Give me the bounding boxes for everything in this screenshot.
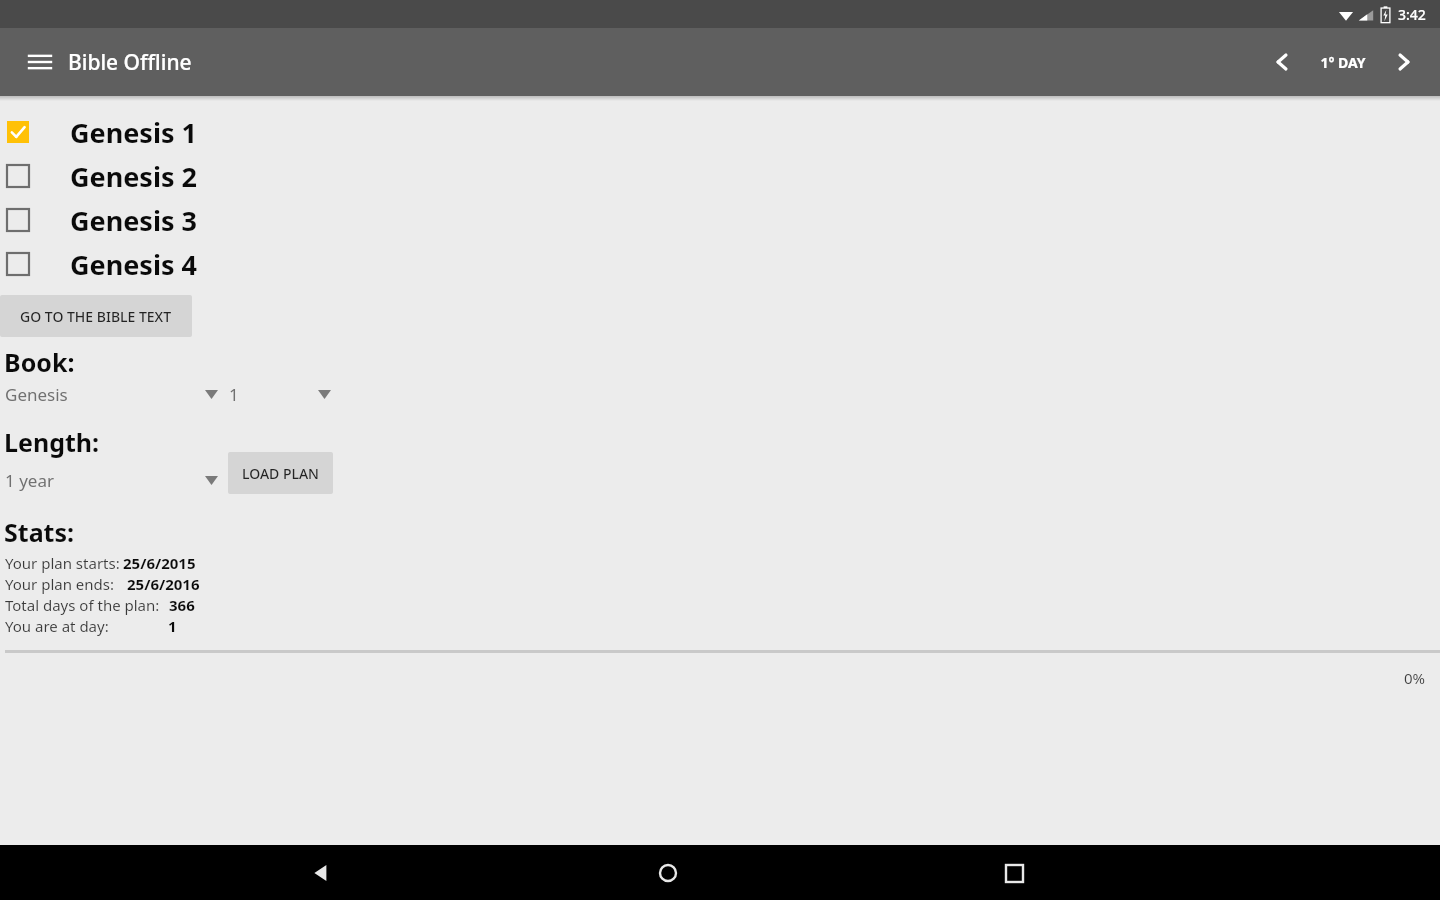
staticText: Total days of the plan:	[5, 595, 160, 615]
button[interactable]: 1 year	[0, 465, 224, 495]
staticText: LOAD PLAN	[242, 464, 319, 483]
staticText: 1	[229, 383, 239, 406]
staticText: Stats:	[4, 515, 75, 549]
staticText: Genesis 2	[70, 158, 197, 195]
staticText: Book:	[4, 345, 75, 379]
button[interactable]: Back	[298, 849, 346, 897]
staticText: Genesis 1	[70, 114, 197, 151]
button[interactable]: Genesis 3	[0, 198, 1440, 242]
button[interactable]: 1° DAY	[1304, 40, 1382, 84]
button[interactable]: Next day	[1382, 40, 1426, 84]
staticText: GO TO THE BIBLE TEXT	[20, 307, 172, 326]
staticText: You are at day:	[5, 616, 109, 636]
button[interactable]: Genesis 4	[0, 242, 1440, 286]
staticText: 366	[169, 595, 195, 615]
staticText: Genesis	[5, 383, 68, 406]
staticText: Your plan starts:	[5, 553, 120, 573]
staticText: Length:	[4, 425, 100, 459]
button[interactable]: LOAD PLAN	[228, 452, 333, 494]
staticText: 25/6/2015	[123, 553, 196, 573]
staticText: 1	[168, 616, 177, 636]
button[interactable]: GO TO THE BIBLE TEXT	[0, 295, 192, 337]
staticText: Genesis 4	[70, 246, 197, 283]
button[interactable]: Home	[644, 849, 692, 897]
staticText: Bible Offline	[68, 48, 192, 77]
staticText: Your plan ends:	[5, 574, 118, 594]
staticText: 1° DAY	[1320, 53, 1366, 72]
staticText: Genesis 3	[70, 202, 197, 239]
button[interactable]: Previous day	[1260, 40, 1304, 84]
button[interactable]: Open navigation menu	[22, 44, 58, 80]
button[interactable]: Genesis	[0, 381, 224, 407]
button[interactable]: Genesis 1	[0, 110, 1440, 154]
button[interactable]: Genesis 2	[0, 154, 1440, 198]
staticText: 1 year	[5, 469, 54, 492]
staticText: 25/6/2016	[127, 574, 200, 594]
button[interactable]: Recent apps	[990, 849, 1038, 897]
button[interactable]: 1	[224, 381, 337, 407]
staticText: 3:42	[1398, 5, 1426, 24]
staticText: 0%	[1404, 668, 1426, 688]
